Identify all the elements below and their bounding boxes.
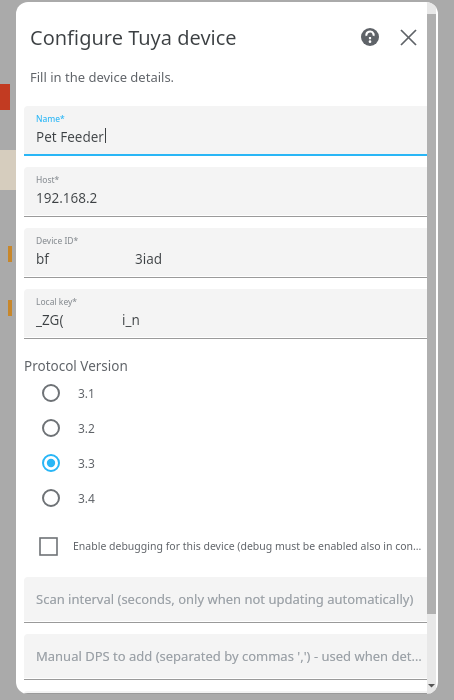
button[interactable]: Host*: [24, 167, 434, 217]
staticText: Manual DPS to add (separated by commas '…: [36, 647, 426, 665]
button[interactable]: Enable debugging for this device (debug …: [16, 531, 426, 561]
staticText: Configure Tuya device: [30, 24, 237, 51]
staticText: 3iad: [135, 250, 163, 268]
button[interactable]: Local key*: [24, 289, 434, 339]
button[interactable]: Name*: [24, 106, 434, 156]
staticText: Host*: [36, 174, 60, 186]
button[interactable]: Scan interval (seconds, only when not up…: [24, 577, 434, 623]
staticText: bf: [36, 250, 49, 268]
button[interactable]: Close: [390, 19, 426, 55]
staticText: Fill in the device details.: [30, 68, 175, 86]
button[interactable]: Help: [352, 19, 388, 55]
staticText: Device ID*: [36, 235, 79, 247]
button[interactable]: Device ID*: [24, 228, 434, 278]
staticText: Local key*: [36, 296, 78, 308]
staticText: Pet Feeder: [36, 128, 104, 146]
staticText: Name*: [36, 113, 65, 125]
button[interactable]: 3.2: [16, 410, 438, 445]
staticText: _ZG(: [36, 311, 64, 329]
button[interactable]: 3.3: [16, 445, 438, 480]
staticText: Enable debugging for this device (debug …: [73, 539, 426, 553]
staticText: Protocol Version: [24, 357, 128, 375]
button[interactable]: 3.4: [16, 480, 438, 515]
staticText: 3.4: [78, 490, 95, 506]
staticText: 3.2: [78, 420, 95, 436]
staticText: 3.1: [78, 385, 95, 401]
button[interactable]: DPIDs to send in RESET command (separate…: [24, 691, 434, 694]
button[interactable]: 3.1: [16, 375, 438, 410]
button[interactable]: Manual DPS to add (separated by commas '…: [24, 634, 434, 680]
staticText: 3.3: [78, 455, 95, 471]
staticText: i_n: [122, 311, 140, 329]
staticText: Scan interval (seconds, only when not up…: [36, 590, 414, 608]
staticText: 192.168.2: [36, 189, 98, 207]
